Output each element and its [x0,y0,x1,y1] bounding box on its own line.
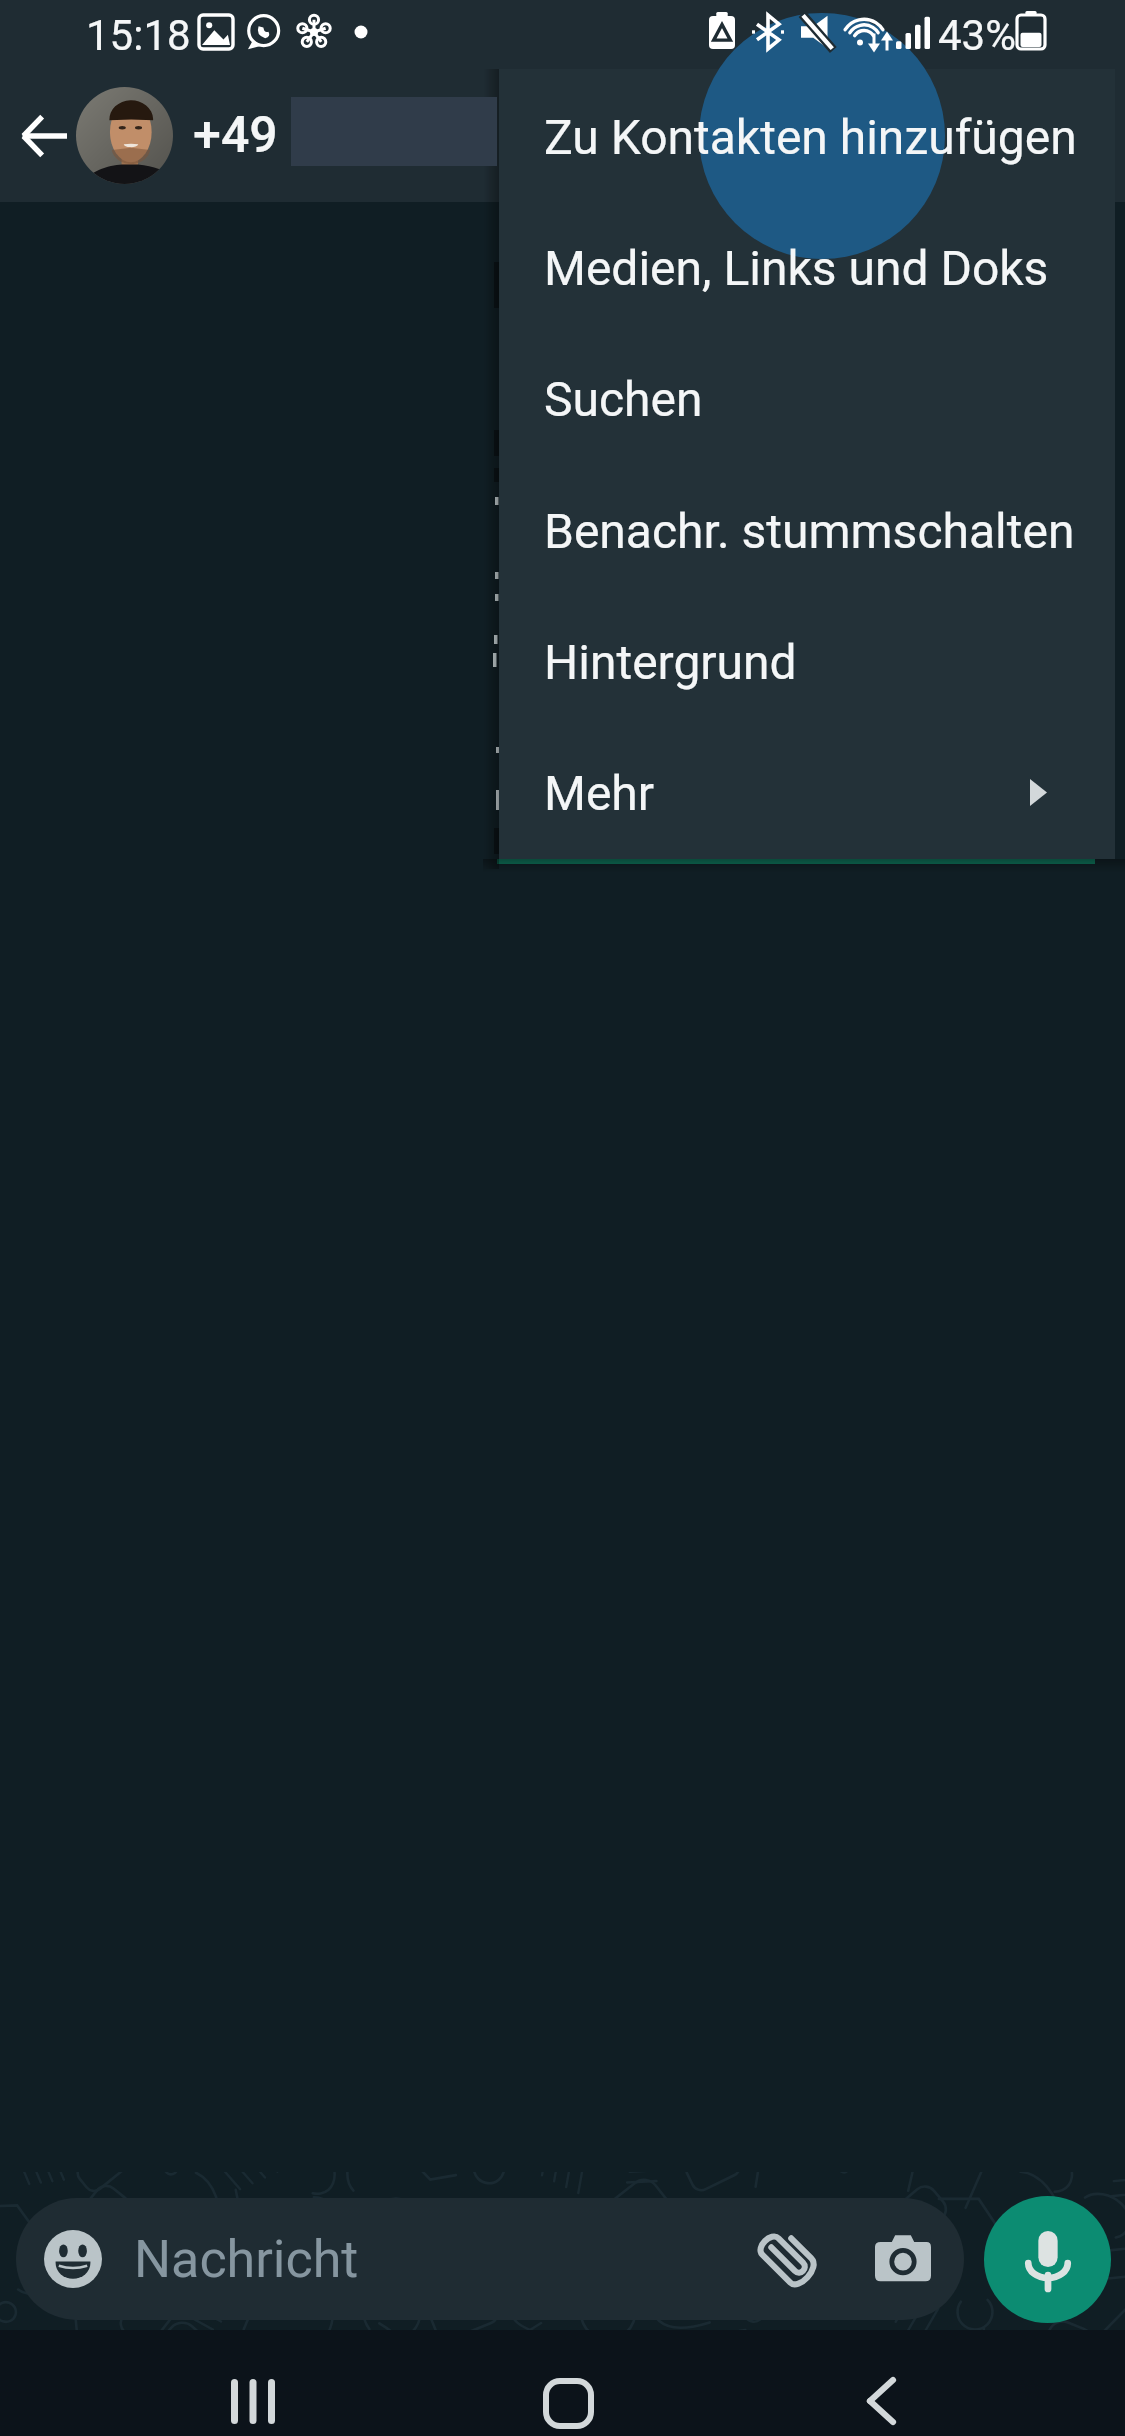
button[interactable]: Benachr. stummschalten [499,465,1115,596]
button[interactable]: Suchen [499,333,1115,464]
staticText: Nachricht [134,2229,359,2290]
button[interactable]: Medien, Links und Doks [499,202,1115,333]
button[interactable]: Hintergrund [499,596,1115,727]
button[interactable]: Emoji [44,2230,102,2288]
button[interactable]: Zu Kontakten hinzufügen [499,71,1115,202]
staticText: Suchen [544,371,703,427]
button[interactable]: Attach [736,2212,832,2308]
button[interactable]: Nachricht [16,2198,964,2320]
button[interactable]: Back [808,2330,958,2436]
button[interactable]: Recent apps [176,2330,326,2436]
button[interactable]: Contact photo [76,87,173,184]
staticText: +49 [193,106,278,165]
staticText: Medien, Links und Doks [544,240,1049,296]
staticText: 15:18 [86,11,191,60]
staticText: 43% [938,11,1016,60]
button[interactable]: Mehr [499,727,1115,858]
staticText: Mehr [544,765,655,821]
staticText: Zu Kontakten hinzufügen [544,109,1077,165]
staticText: Hintergrund [544,634,797,690]
staticText: Benachr. stummschalten [544,503,1075,559]
button[interactable]: Home [492,2330,642,2436]
button[interactable]: Camera [855,2212,951,2308]
button[interactable]: Back [4,87,84,185]
button[interactable]: Record voice message [984,2196,1111,2323]
